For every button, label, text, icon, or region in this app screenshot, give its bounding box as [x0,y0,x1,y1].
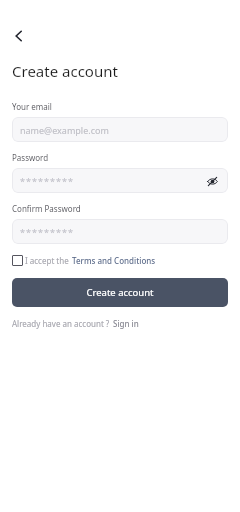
staticText: Confirm Password [12,203,81,214]
staticText: * [32,175,37,187]
button[interactable]: Terms and Conditions [72,255,156,266]
staticText: Terms and Conditions [72,255,156,266]
button[interactable]: I accept the [12,255,228,266]
staticText: I accept the [25,255,69,266]
staticText: * [26,175,31,187]
staticText: * [50,175,55,187]
staticText: * [56,175,61,187]
button[interactable]: Create account [12,278,228,307]
staticText: * [32,226,37,238]
staticText: * [44,226,49,238]
staticText: Already have an account ? [12,318,110,329]
staticText: * [62,226,67,238]
button[interactable]: Toggle password visibility [204,173,220,189]
staticText: * [62,175,67,187]
staticText: * [56,226,61,238]
staticText: name@example.com [20,124,109,136]
button[interactable]: name@example.com [12,117,228,142]
button[interactable]: * [12,168,228,193]
staticText: Password [12,152,49,163]
staticText: * [68,175,73,187]
staticText: Sign in [113,318,139,329]
staticText: * [20,175,25,187]
button[interactable]: Sign in [113,318,139,329]
staticText: Create account [12,61,118,81]
staticText: * [20,226,25,238]
staticText: * [26,226,31,238]
staticText: * [50,226,55,238]
staticText: Your email [12,101,52,112]
staticText: * [68,226,73,238]
staticText: * [38,175,43,187]
button[interactable]: Back [12,26,32,46]
button[interactable]: * [12,219,228,244]
staticText: * [38,226,43,238]
staticText: Create account [86,286,154,299]
staticText: * [44,175,49,187]
